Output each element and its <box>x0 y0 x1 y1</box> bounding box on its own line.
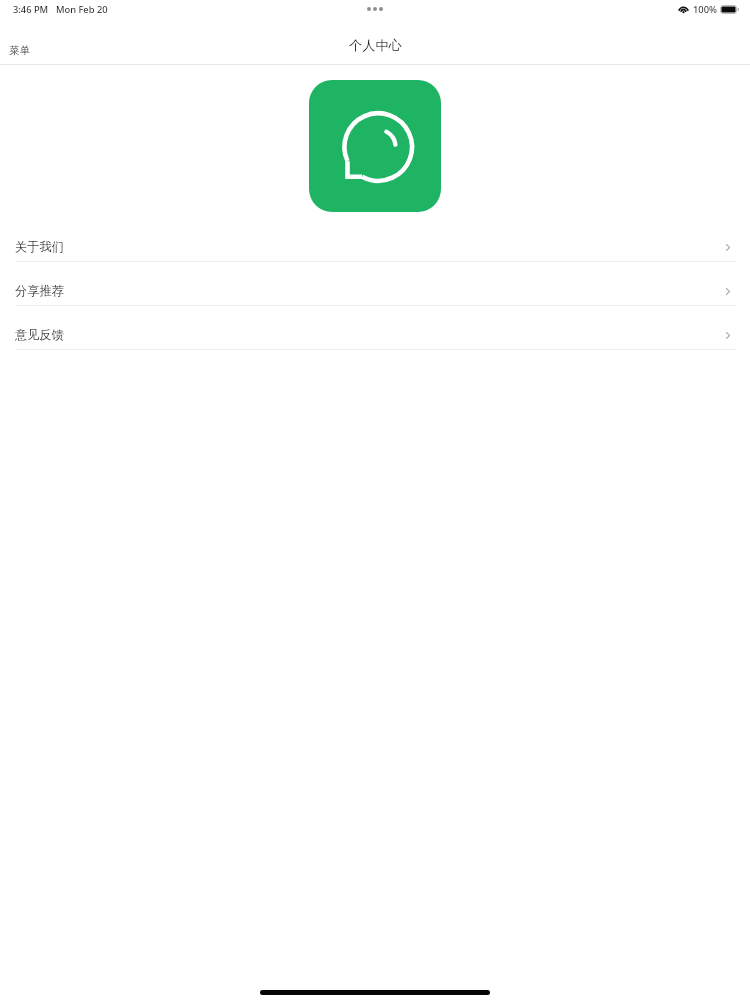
staticText: 菜单 <box>9 44 30 57</box>
staticText: 分享推荐 <box>15 283 64 298</box>
staticText: 意见反馈 <box>15 327 64 342</box>
staticText: 100% <box>693 3 717 16</box>
staticText: 关于我们 <box>15 239 64 254</box>
button[interactable]: App logo <box>309 80 441 212</box>
button[interactable]: 菜单 <box>0 38 39 63</box>
staticText: Mon Feb 20 <box>56 3 108 16</box>
button[interactable]: 意见反馈 <box>0 306 750 350</box>
button[interactable]: 关于我们 <box>0 218 750 262</box>
staticText: 3:46 PM <box>13 3 49 16</box>
staticText: 个人中心 <box>349 37 402 54</box>
button[interactable]: 分享推荐 <box>0 262 750 306</box>
